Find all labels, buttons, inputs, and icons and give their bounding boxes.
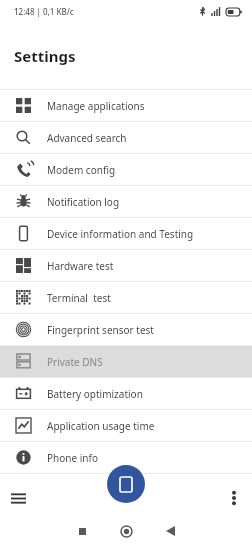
staticText: Private DNS: [47, 355, 103, 369]
button[interactable]: Phone info: [0, 442, 252, 473]
button[interactable]: Battery optimization: [0, 378, 252, 409]
button[interactable]: More options: [216, 480, 252, 516]
button[interactable]: Hardware test: [0, 250, 252, 281]
staticText: Manage applications: [47, 99, 145, 113]
staticText: Terminal test: [47, 291, 111, 305]
staticText: Fingerprint sensor test: [47, 323, 154, 337]
staticText: 12:48 | 0,1 KB/c: [14, 6, 74, 17]
staticText: Descent case: [47, 483, 109, 497]
button[interactable]: Back: [148, 517, 192, 545]
button[interactable]: Private DNS: [0, 346, 252, 377]
button[interactable]: Terminal test: [0, 282, 252, 313]
staticText: Battery optimization: [47, 387, 143, 401]
staticText: Modem config: [47, 163, 116, 177]
button[interactable]: Descent case: [0, 474, 252, 505]
button[interactable]: Device information and Testing: [0, 218, 252, 249]
button[interactable]: Manage applications: [0, 90, 252, 121]
button[interactable]: Modem config: [0, 154, 252, 185]
staticText: Advanced search: [47, 131, 127, 145]
button[interactable]: Application usage time: [0, 410, 252, 441]
staticText: Device information and Testing: [47, 227, 194, 241]
button[interactable]: Recents: [60, 517, 104, 545]
button[interactable]: Notification log: [0, 186, 252, 217]
staticText: Hardware test: [47, 259, 114, 273]
staticText: Notification log: [47, 195, 120, 209]
button[interactable]: Home: [104, 517, 148, 545]
button[interactable]: Fingerprint sensor test: [0, 314, 252, 345]
staticText: Application usage time: [47, 419, 155, 433]
button[interactable]: Advanced search: [0, 122, 252, 153]
button[interactable]: Device: [107, 465, 145, 503]
button[interactable]: Menu: [0, 480, 36, 516]
staticText: Settings: [14, 46, 76, 66]
staticText: Phone info: [47, 451, 98, 465]
